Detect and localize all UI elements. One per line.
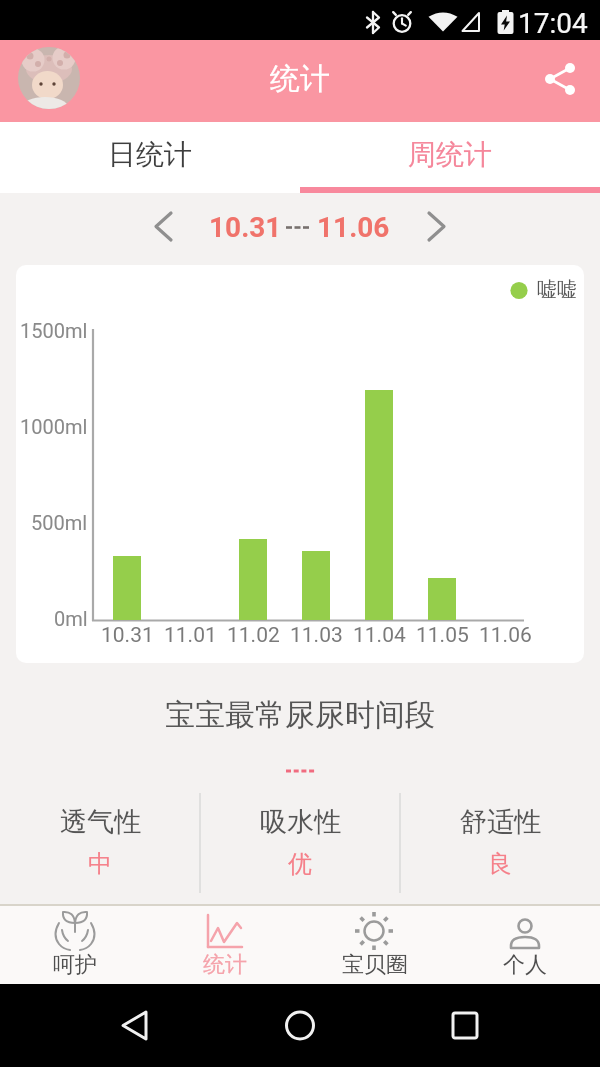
staticText: 日统计: [108, 137, 192, 172]
staticText: 良: [488, 849, 512, 879]
staticText: 500ml: [31, 511, 88, 534]
staticText: 统计: [270, 60, 330, 98]
staticText: 呵护: [53, 951, 97, 979]
button[interactable]: [540, 58, 584, 102]
staticText: 11.06: [479, 623, 532, 648]
button[interactable]: 日统计: [0, 122, 300, 193]
staticText: 0ml: [54, 607, 88, 630]
staticText: 11.03: [290, 623, 343, 648]
button[interactable]: [143, 204, 187, 248]
staticText: 中: [88, 849, 112, 879]
staticText: 11.04: [353, 623, 406, 648]
staticText: 11.05: [416, 623, 469, 648]
button[interactable]: 统计: [150, 906, 300, 984]
button[interactable]: [18, 47, 80, 109]
staticText: 10.31: [209, 211, 282, 244]
staticText: 嘘嘘: [537, 277, 577, 302]
staticText: 宝贝圈: [342, 951, 408, 979]
button[interactable]: 宝贝圈: [300, 906, 450, 984]
button[interactable]: [413, 204, 457, 248]
staticText: 透气性: [60, 805, 141, 839]
button[interactable]: [105, 996, 165, 1056]
button[interactable]: [435, 996, 495, 1056]
staticText: 17:04: [518, 7, 588, 40]
button[interactable]: 周统计: [300, 122, 600, 193]
staticText: 1000ml: [20, 415, 88, 438]
staticText: 11.06: [317, 211, 390, 244]
button[interactable]: [270, 996, 330, 1056]
staticText: 个人: [503, 951, 547, 979]
button[interactable]: 个人: [450, 906, 600, 984]
staticText: 11.02: [227, 623, 280, 648]
staticText: 周统计: [408, 137, 492, 172]
staticText: 优: [288, 849, 312, 879]
staticText: 吸水性: [260, 805, 341, 839]
staticText: 10.31: [101, 623, 154, 648]
staticText: 统计: [203, 951, 247, 979]
staticText: 宝宝最常尿尿时间段: [165, 696, 435, 734]
staticText: 舒适性: [460, 805, 541, 839]
staticText: 11.01: [164, 623, 217, 648]
button[interactable]: 呵护: [0, 906, 150, 984]
staticText: 1500ml: [20, 319, 88, 342]
